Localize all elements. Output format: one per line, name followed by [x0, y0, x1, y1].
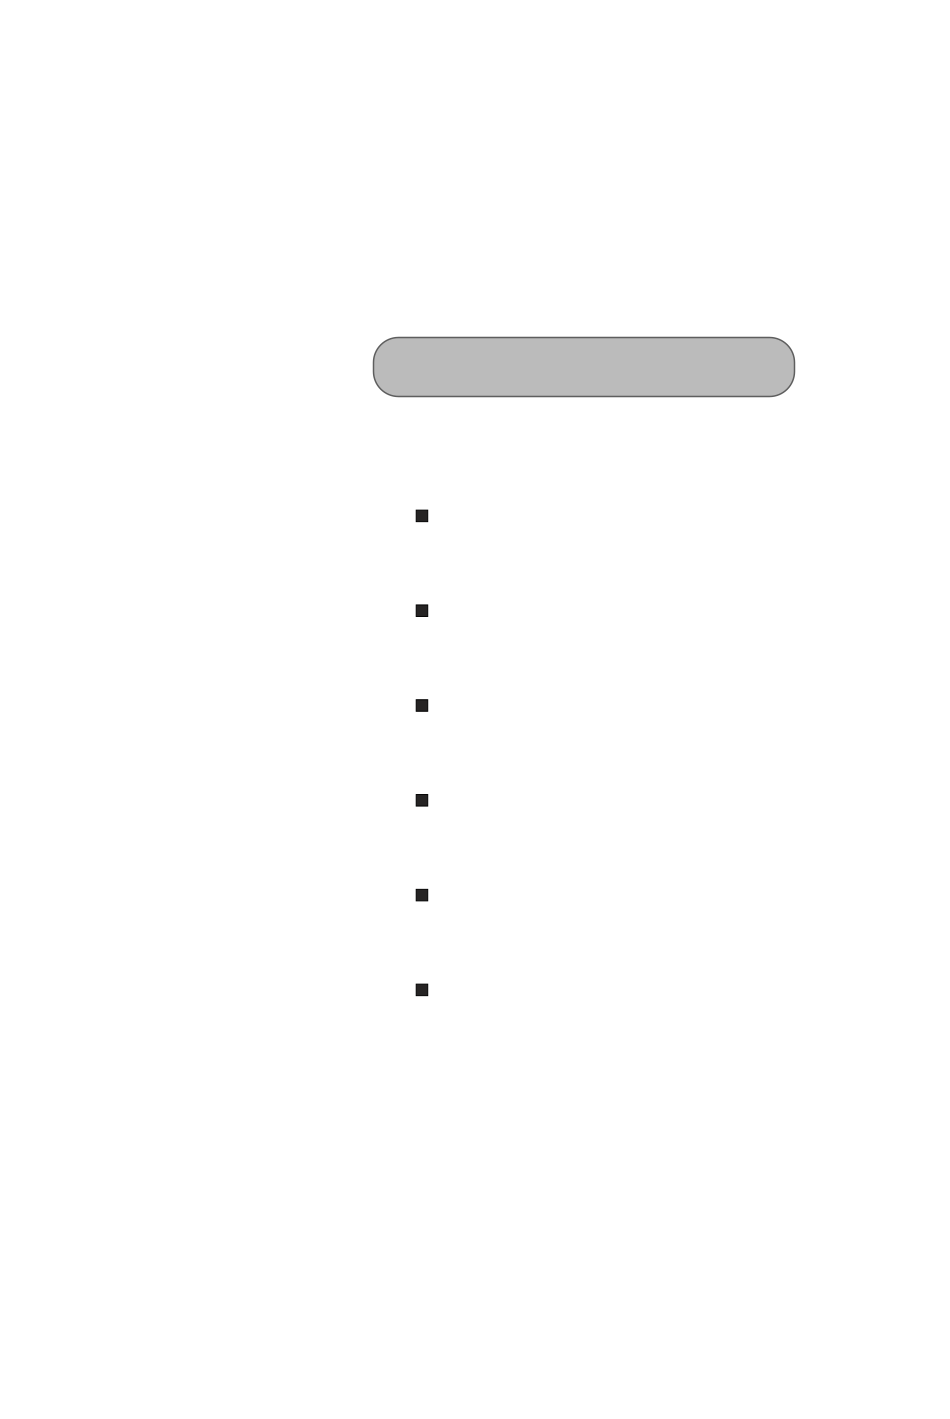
button[interactable]: Item 6	[373, 925, 794, 1020]
button[interactable]: Item 1	[373, 451, 794, 546]
button[interactable]: Item 4	[373, 735, 794, 830]
button[interactable]: Item 2	[373, 546, 794, 641]
button[interactable]: Search	[373, 337, 794, 396]
button[interactable]: Item 3	[373, 641, 794, 736]
button[interactable]: Item 5	[373, 830, 794, 925]
